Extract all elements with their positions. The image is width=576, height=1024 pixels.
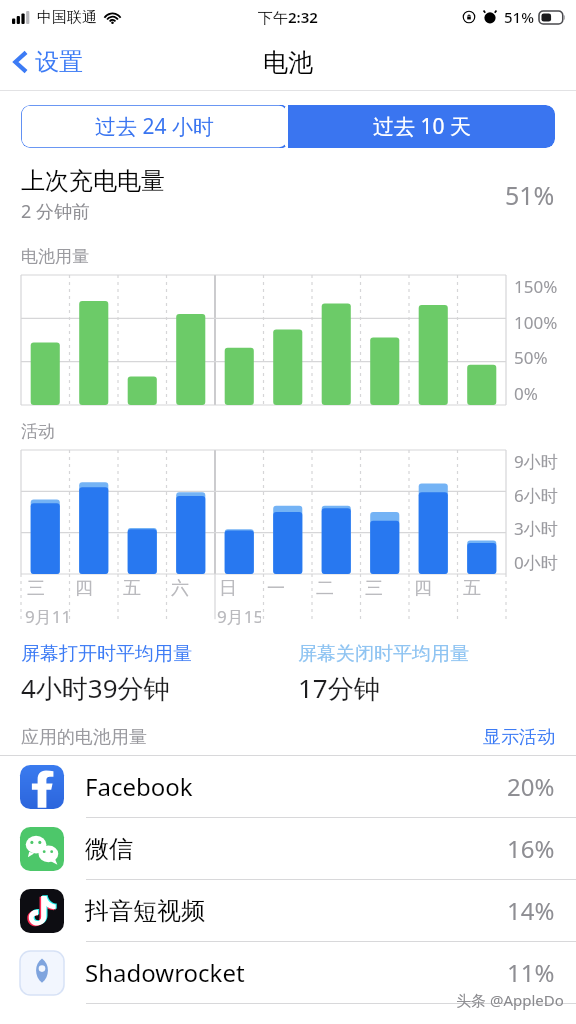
- staticText: 0小时: [514, 551, 558, 574]
- button[interactable]: 微信: [0, 818, 576, 880]
- staticText: 17分钟: [298, 670, 380, 706]
- staticText: 3小时: [514, 517, 558, 540]
- staticText: 20%: [507, 770, 555, 803]
- staticText: 头条 @AppleDo: [456, 990, 564, 1010]
- staticText: 应用的电池用量: [21, 726, 483, 749]
- staticText: 五: [123, 577, 141, 600]
- staticText: 过去 10 天: [373, 112, 471, 141]
- staticText: 50%: [514, 346, 548, 369]
- staticText: 四: [75, 577, 93, 600]
- staticText: 显示活动: [483, 726, 555, 749]
- staticText: 电池: [263, 47, 313, 78]
- staticText: 150%: [514, 275, 558, 298]
- staticText: 9月11日: [25, 605, 69, 628]
- button[interactable]: 过去 24 小时: [21, 105, 288, 148]
- staticText: 51%: [504, 7, 534, 27]
- staticText: 2 分钟前: [21, 199, 90, 224]
- staticText: 下午2:32: [258, 7, 318, 27]
- staticText: 二: [316, 577, 334, 600]
- staticText: 11%: [507, 956, 555, 989]
- staticText: 日: [219, 577, 237, 600]
- staticText: 三: [27, 577, 45, 600]
- button[interactable]: 显示活动: [483, 726, 555, 749]
- button[interactable]: 抖音短视频: [0, 880, 576, 942]
- button[interactable]: 设置: [0, 41, 93, 83]
- staticText: 电池用量: [21, 246, 89, 267]
- button[interactable]: Facebook: [0, 756, 576, 818]
- staticText: 100%: [514, 311, 558, 334]
- staticText: 6小时: [514, 484, 558, 507]
- staticText: 过去 24 小时: [95, 112, 214, 141]
- staticText: 中国联通: [37, 8, 97, 27]
- staticText: 四: [414, 577, 432, 600]
- staticText: 三: [365, 577, 383, 600]
- button[interactable]: Shadowrocket: [0, 942, 576, 1004]
- staticText: 设置: [35, 47, 83, 77]
- staticText: 微信: [85, 834, 507, 864]
- staticText: Shadowrocket: [85, 956, 507, 989]
- staticText: 上次充电电量: [21, 166, 165, 196]
- staticText: 屏幕打开时平均用量: [21, 642, 192, 666]
- staticText: 51%: [505, 178, 555, 212]
- staticText: 屏幕关闭时平均用量: [298, 642, 469, 666]
- staticText: 五: [463, 577, 481, 600]
- staticText: 一: [267, 577, 285, 600]
- staticText: 9月15日: [217, 605, 261, 628]
- staticText: 活动: [21, 421, 55, 442]
- staticText: 14%: [507, 894, 555, 927]
- staticText: 抖音短视频: [85, 896, 507, 926]
- button[interactable]: 过去 10 天: [288, 105, 555, 148]
- staticText: Facebook: [85, 770, 507, 803]
- staticText: 16%: [507, 832, 555, 865]
- staticText: 0%: [514, 382, 538, 405]
- staticText: 9小时: [514, 450, 558, 473]
- staticText: 六: [171, 577, 189, 600]
- staticText: 4小时39分钟: [21, 670, 170, 706]
